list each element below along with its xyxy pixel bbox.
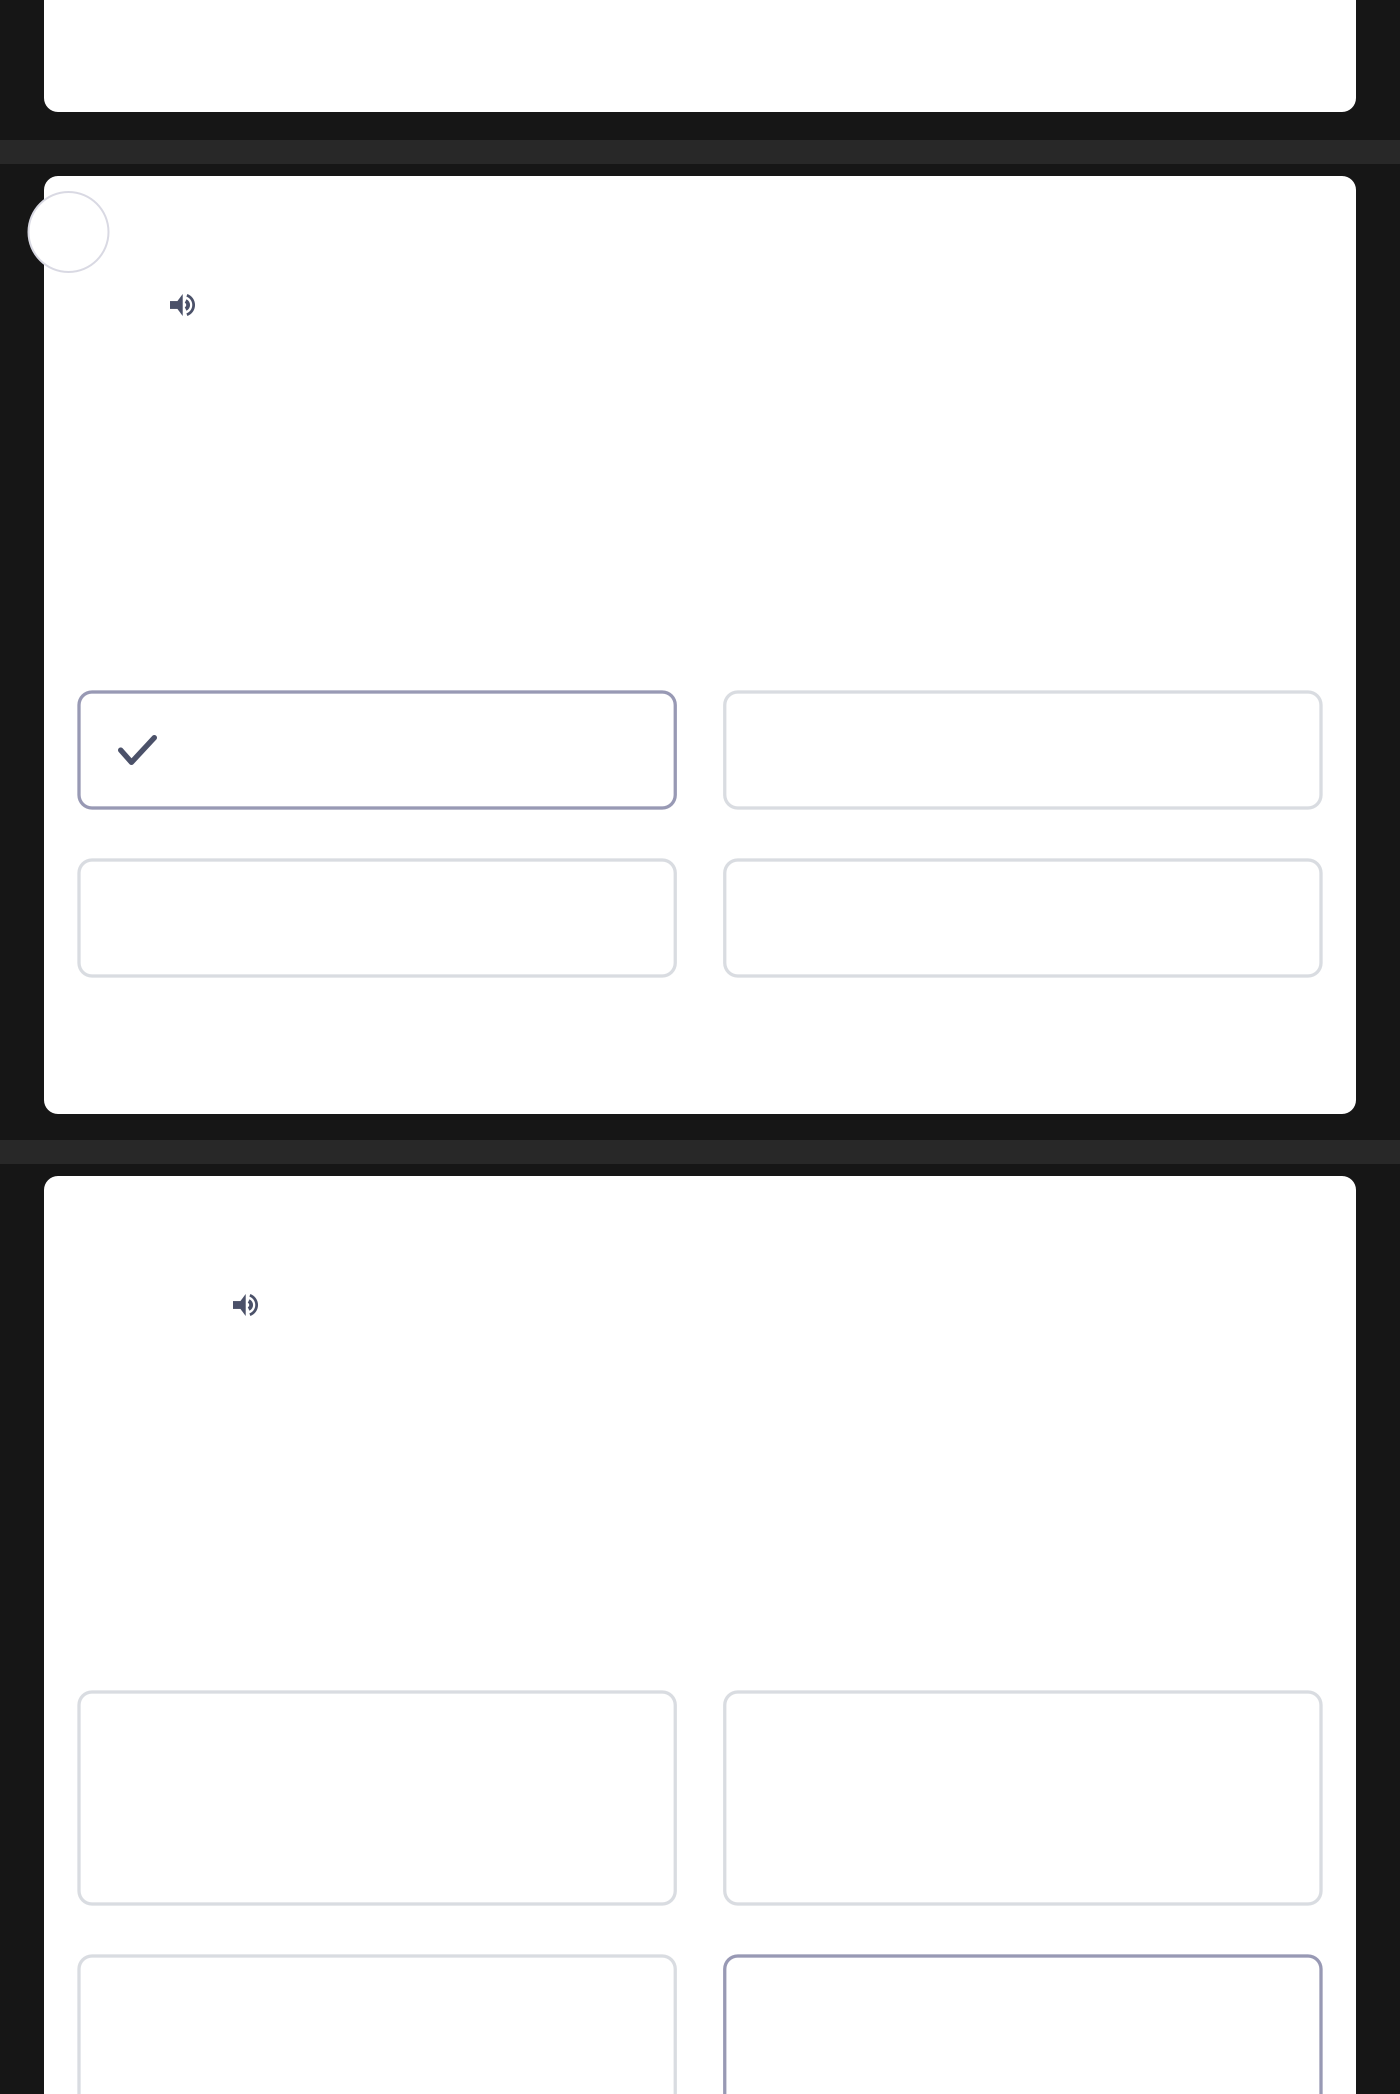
button[interactable]: Choice B [725, 692, 1321, 808]
button[interactable]: Play the prompt audio [170, 293, 194, 317]
button[interactable]: Choice D, selected [725, 1956, 1321, 2094]
button[interactable]: Choice C [79, 1956, 675, 2094]
button[interactable]: Play the prompt audio [233, 1293, 257, 1317]
button[interactable]: Choice D [725, 860, 1321, 976]
button[interactable]: Choice A [79, 1692, 675, 1904]
button[interactable]: Choice B [725, 1692, 1321, 1904]
button[interactable]: Choice A, correct answer [79, 692, 675, 808]
button[interactable]: Speaker [28, 192, 108, 272]
button[interactable]: Choice C [79, 860, 675, 976]
